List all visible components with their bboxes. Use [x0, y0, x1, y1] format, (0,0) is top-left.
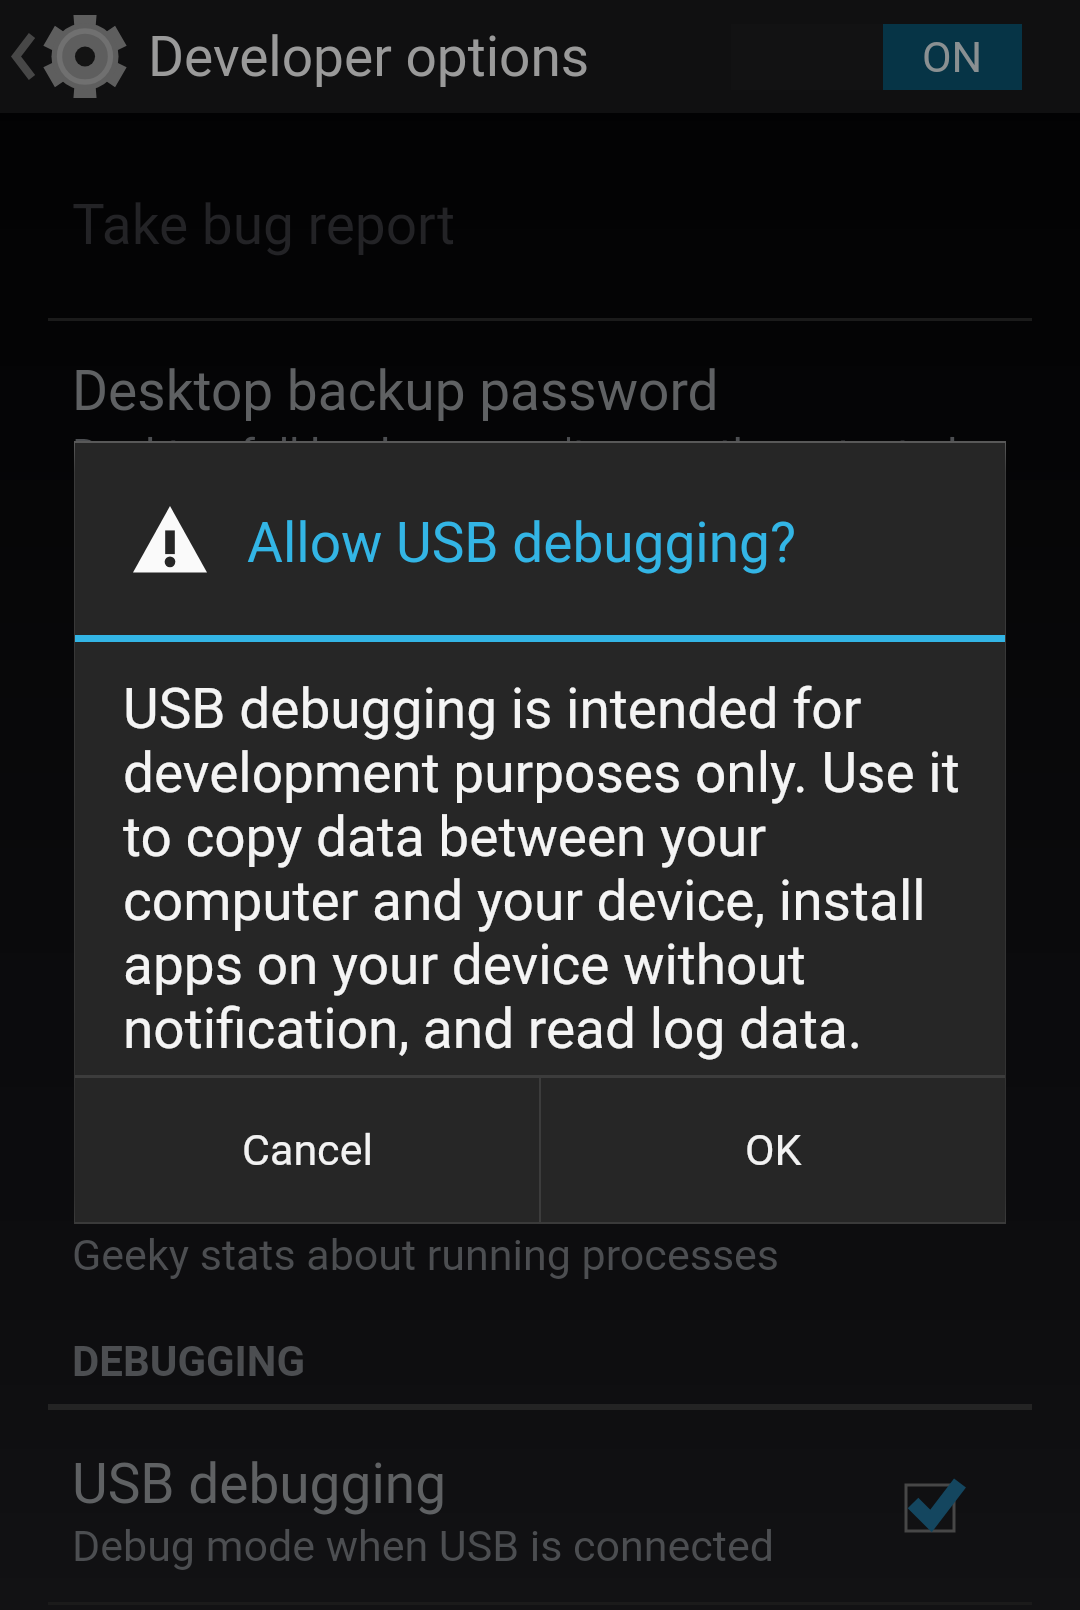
button[interactable]: Cancel: [75, 1078, 539, 1222]
staticText: DEBUGGING: [72, 1337, 306, 1386]
staticText: Developer options: [148, 25, 590, 89]
staticText: Desktop full backups aren't currently pr…: [72, 429, 958, 479]
button[interactable]: USB debugging checkbox: [890, 1470, 972, 1552]
staticText: Desktop backup password: [72, 359, 719, 423]
staticText: Geeky stats about running processes: [72, 1230, 780, 1280]
button[interactable]: Developer options toggle, on: [731, 24, 1022, 90]
staticText: Debug mode when USB is connected: [72, 1521, 774, 1571]
staticText: ON: [922, 32, 983, 82]
staticText: USB debugging is intended for developmen…: [123, 677, 995, 1061]
staticText: Take bug report: [72, 193, 456, 257]
staticText: Cancel: [242, 1125, 373, 1175]
button[interactable]: Take bug report: [0, 145, 1080, 317]
button[interactable]: Navigate up: [0, 0, 148, 113]
button[interactable]: Desktop backup password: [0, 322, 1080, 496]
staticText: OK: [745, 1125, 802, 1175]
staticText: USB debugging: [72, 1452, 447, 1516]
button[interactable]: OK: [541, 1078, 1005, 1222]
button[interactable]: USB debugging: [0, 1410, 1080, 1602]
staticText: Allow USB debugging?: [247, 511, 796, 575]
